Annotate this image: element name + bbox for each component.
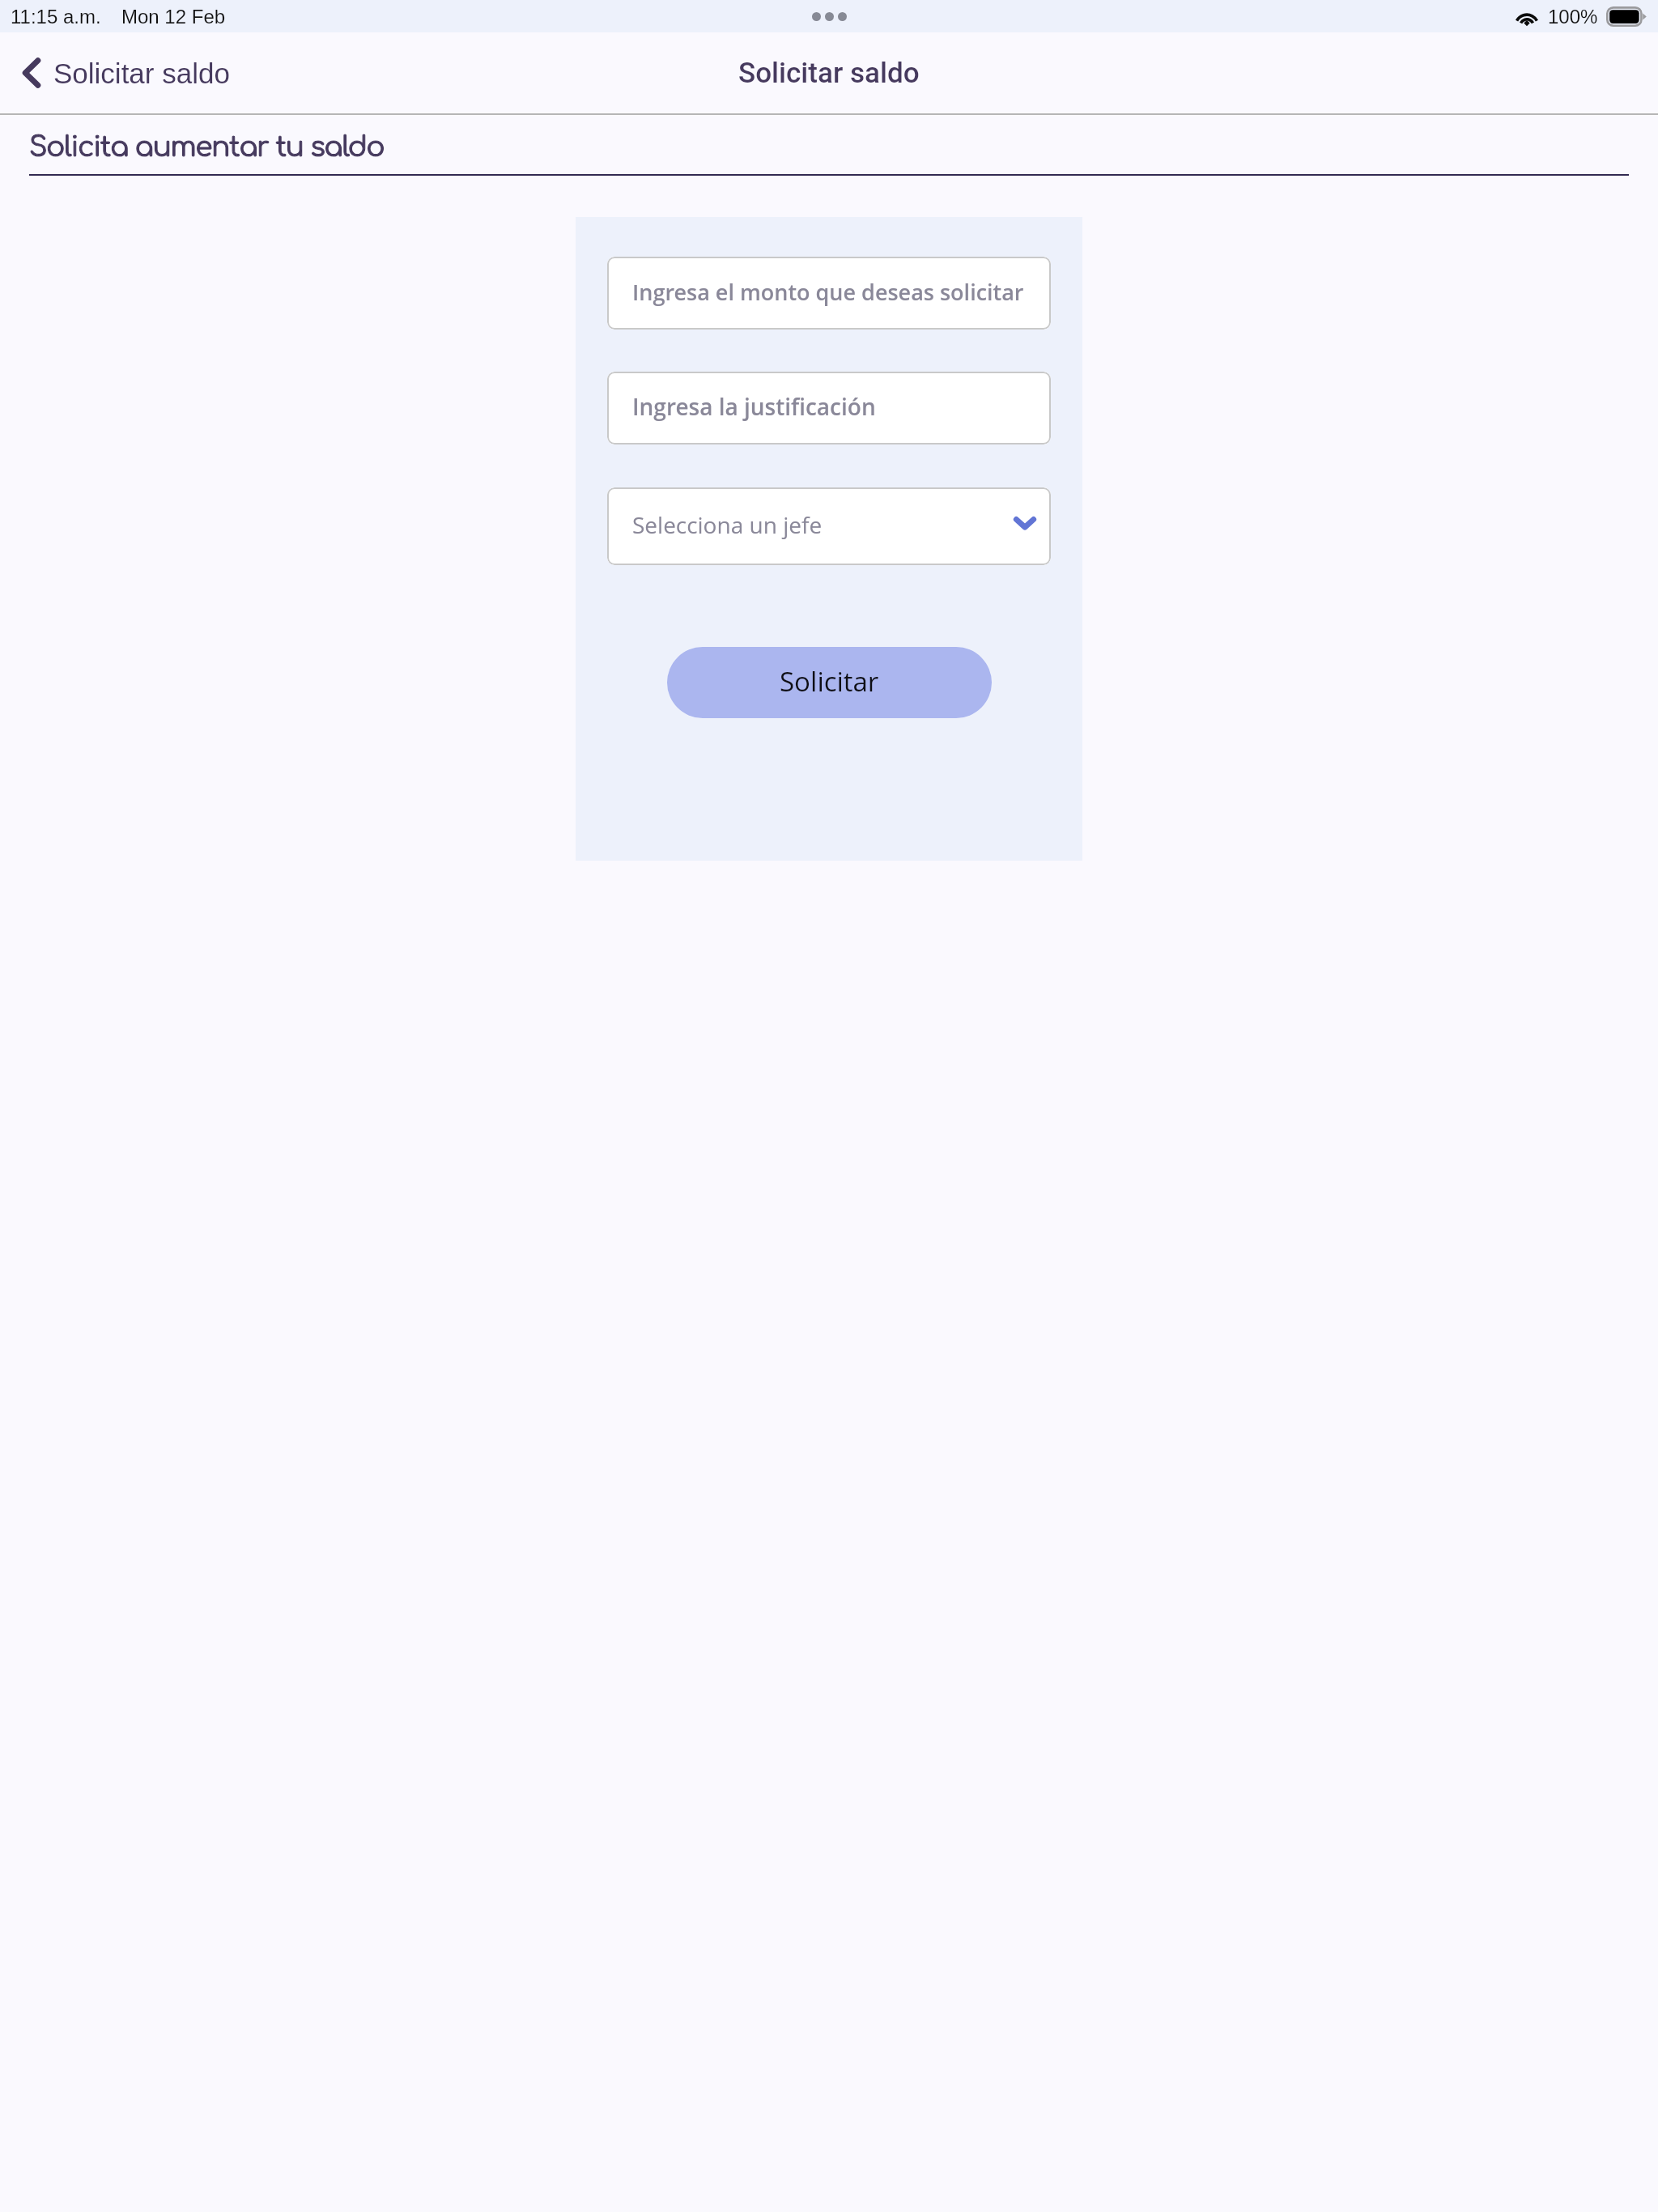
- staticText: Solicitar: [780, 663, 879, 700]
- staticText: 11:15 a.m.: [11, 6, 101, 28]
- other: Expandir: [1014, 516, 1036, 530]
- staticText: 100%: [1548, 6, 1598, 28]
- staticText: Ingresa el monto que deseas solicitar: [632, 277, 1024, 307]
- button[interactable]: Solicitar: [667, 647, 992, 718]
- staticText: Solicitar saldo: [738, 57, 920, 90]
- button[interactable]: Atrás: Solicitar saldo: [0, 49, 244, 97]
- button[interactable]: Selecciona un jefe: [607, 487, 1051, 565]
- staticText: Mon 12 Feb: [121, 6, 226, 28]
- staticText: Ingresa la justificación: [632, 391, 876, 422]
- staticText: Solicita aumentar tu saldo: [29, 132, 385, 163]
- staticText: Solicita aumentar tu saldo: [29, 132, 385, 163]
- staticText: Solicitar saldo: [53, 57, 230, 89]
- staticText: Selecciona un jefe: [632, 509, 823, 540]
- button[interactable]: Ingresa el monto que deseas solicitar: [607, 257, 1051, 330]
- button[interactable]: Ingresa la justificación: [607, 372, 1051, 445]
